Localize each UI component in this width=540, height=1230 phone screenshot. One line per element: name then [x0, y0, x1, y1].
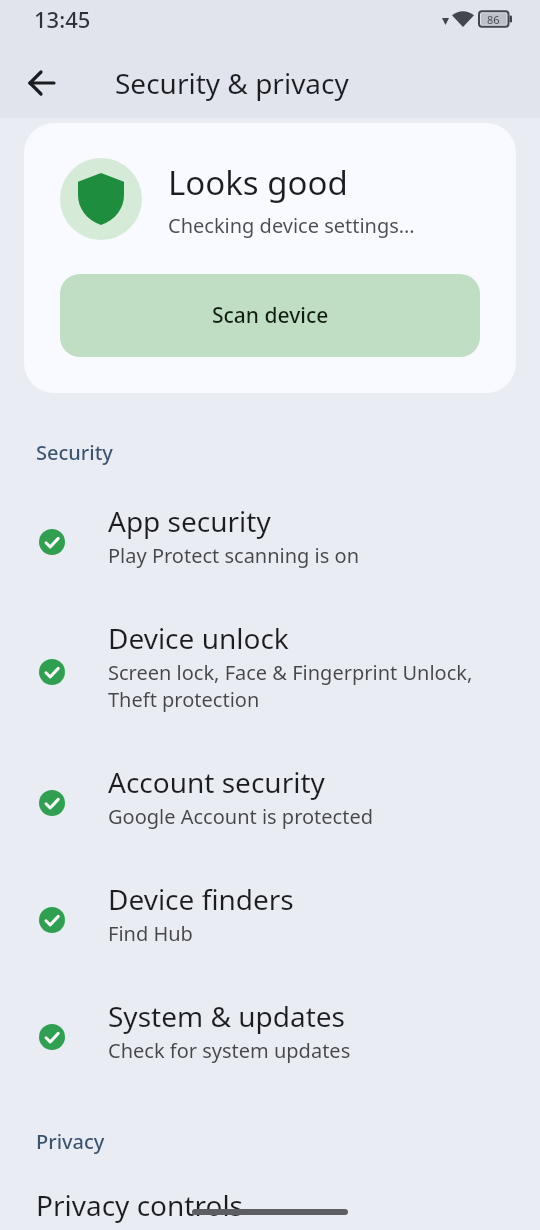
staticText: 86: [487, 12, 500, 27]
staticText: Device unlock: [108, 619, 289, 657]
button[interactable]: Privacy controls: [36, 1186, 244, 1224]
staticText: Scan device: [212, 301, 329, 330]
staticText: System & updates: [108, 997, 345, 1035]
staticText: Security & privacy: [115, 64, 349, 102]
button[interactable]: App security: [0, 483, 540, 600]
staticText: 13:45: [34, 4, 91, 34]
staticText: App security: [108, 502, 271, 540]
staticText: Play Protect scanning is on: [108, 542, 359, 569]
staticText: Find Hub: [108, 920, 193, 947]
staticText: Theft protection: [108, 686, 260, 713]
staticText: Privacy: [36, 1128, 105, 1155]
staticText: Security: [36, 439, 113, 466]
button[interactable]: Account security: [0, 744, 540, 861]
button[interactable]: Device finders: [0, 861, 540, 978]
staticText: Account security: [108, 763, 325, 801]
staticText: Checking device settings…: [168, 212, 415, 239]
staticText: Check for system updates: [108, 1037, 351, 1064]
staticText: Screen lock, Face & Fingerprint Unlock,: [108, 659, 473, 686]
staticText: Device finders: [108, 880, 294, 918]
button[interactable]: Device unlock: [0, 600, 540, 744]
staticText: Google Account is protected: [108, 803, 374, 830]
button[interactable]: [18, 59, 66, 107]
button[interactable]: Scan device: [60, 274, 480, 357]
button[interactable]: System & updates: [0, 978, 540, 1095]
staticText: Looks good: [168, 160, 348, 205]
